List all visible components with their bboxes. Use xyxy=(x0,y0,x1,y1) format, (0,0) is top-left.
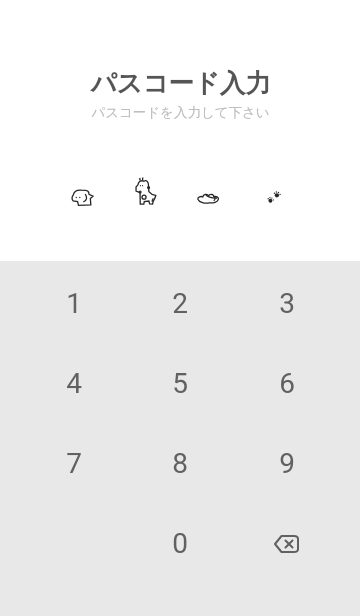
button[interactable]: 4 xyxy=(35,344,113,422)
staticText: パスコード入力 xyxy=(90,67,271,99)
staticText: 1 xyxy=(66,287,82,320)
button[interactable]: 0 xyxy=(141,504,219,582)
button[interactable]: 3 xyxy=(248,264,326,342)
staticText: 7 xyxy=(66,447,82,480)
staticText: 4 xyxy=(66,367,82,400)
button[interactable]: 7 xyxy=(35,424,113,502)
staticText: 2 xyxy=(172,287,188,320)
staticText: パスコードを入力して下さい xyxy=(91,104,270,121)
button[interactable]: 5 xyxy=(141,344,219,422)
button[interactable]: Delete xyxy=(248,504,326,582)
staticText: 5 xyxy=(172,367,188,400)
button[interactable]: 8 xyxy=(141,424,219,502)
staticText: 8 xyxy=(172,447,188,480)
button[interactable]: 6 xyxy=(248,344,326,422)
staticText: 3 xyxy=(279,287,295,320)
button[interactable]: 2 xyxy=(141,264,219,342)
button[interactable]: 1 xyxy=(35,264,113,342)
staticText: 9 xyxy=(279,447,295,480)
staticText: 6 xyxy=(279,367,295,400)
staticText: 0 xyxy=(172,527,188,560)
button[interactable]: 9 xyxy=(248,424,326,502)
